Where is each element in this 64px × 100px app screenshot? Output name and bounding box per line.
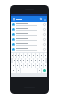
button[interactable] xyxy=(42,58,45,63)
button[interactable] xyxy=(32,63,35,68)
button[interactable] xyxy=(11,22,47,27)
button[interactable]: Enter xyxy=(42,68,47,73)
button[interactable] xyxy=(26,58,29,63)
button[interactable] xyxy=(20,53,23,58)
button[interactable] xyxy=(11,37,47,42)
button[interactable] xyxy=(36,53,39,58)
button[interactable]: Symbols xyxy=(11,68,16,73)
button[interactable] xyxy=(44,63,47,68)
button[interactable] xyxy=(11,47,47,52)
button[interactable] xyxy=(11,32,47,37)
button[interactable] xyxy=(24,63,27,68)
button[interactable]: Search xyxy=(39,17,43,21)
button[interactable] xyxy=(38,58,41,63)
button[interactable] xyxy=(16,58,18,63)
button[interactable] xyxy=(24,53,27,58)
button[interactable] xyxy=(17,53,19,58)
button[interactable] xyxy=(22,58,25,63)
button[interactable] xyxy=(11,53,13,58)
button[interactable] xyxy=(11,63,15,68)
button[interactable] xyxy=(40,53,43,58)
button[interactable] xyxy=(20,63,23,68)
button[interactable] xyxy=(32,53,35,58)
button[interactable] xyxy=(34,58,37,63)
button[interactable] xyxy=(11,27,47,32)
button[interactable] xyxy=(14,53,16,58)
button[interactable]: Navigation menu xyxy=(12,17,16,21)
button[interactable] xyxy=(16,63,19,68)
button[interactable] xyxy=(44,53,47,58)
button[interactable] xyxy=(13,58,15,63)
button[interactable]: Emoji xyxy=(17,68,20,73)
button[interactable] xyxy=(28,53,31,58)
button[interactable]: More options xyxy=(43,18,46,21)
button[interactable] xyxy=(36,63,39,68)
button[interactable] xyxy=(28,63,31,68)
button[interactable] xyxy=(40,63,43,68)
button[interactable] xyxy=(30,58,33,63)
button[interactable] xyxy=(19,58,21,63)
button[interactable] xyxy=(11,42,47,47)
button[interactable]: Period xyxy=(38,68,41,73)
